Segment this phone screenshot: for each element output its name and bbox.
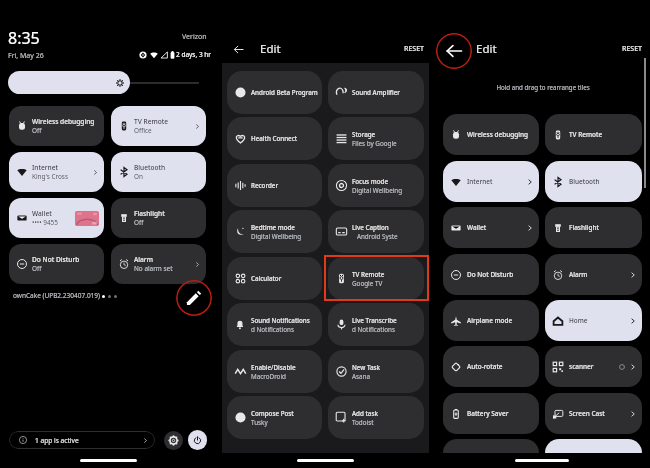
staticText: Off xyxy=(32,264,42,273)
staticText: Wireless debugging xyxy=(467,130,534,139)
staticText: Tusky xyxy=(251,418,268,427)
staticText: d Notifications xyxy=(352,325,395,334)
staticText: Recorder xyxy=(251,181,279,190)
staticText: RESET xyxy=(404,44,425,54)
button[interactable]: Bedtime mode xyxy=(227,210,322,253)
staticText: Off xyxy=(32,126,42,135)
staticText: Digital Wellbeing xyxy=(251,232,302,241)
staticText: Fri, May 26 xyxy=(8,51,44,61)
button[interactable]: Health Connect xyxy=(227,117,322,160)
staticText: Flashlight xyxy=(134,209,165,218)
staticText: •••• 9455 xyxy=(32,218,58,227)
button[interactable]: scanner xyxy=(545,346,642,387)
button[interactable]: Storage xyxy=(328,117,424,160)
staticText: Compose Post xyxy=(251,409,294,418)
staticText: Storage xyxy=(352,130,376,139)
button[interactable]: Focus mode xyxy=(328,164,424,207)
staticText: Office xyxy=(134,126,152,135)
staticText: Files by Google xyxy=(352,139,397,148)
staticText: Sound Notifications xyxy=(251,316,310,325)
button[interactable]: TV Remote xyxy=(545,114,642,155)
button[interactable]: Sound Amplifier xyxy=(328,71,424,114)
staticText: Sound Amplifier xyxy=(352,88,400,97)
staticText: Bluetooth xyxy=(569,177,637,186)
button[interactable]: Settings xyxy=(164,431,183,450)
button[interactable] xyxy=(443,439,539,468)
staticText: Internet xyxy=(32,163,59,172)
staticText: Flashlight xyxy=(569,223,637,232)
button[interactable]: Wireless debugging xyxy=(9,106,104,146)
button[interactable]: Enable/Disable xyxy=(227,350,322,393)
button[interactable]: Android Beta Program xyxy=(227,71,322,114)
button[interactable]: Edit xyxy=(176,280,212,316)
staticText: Calculator xyxy=(251,274,282,283)
button[interactable]: Wallet xyxy=(443,207,539,248)
staticText: Enable/Disable xyxy=(251,363,296,372)
button[interactable]: Internet xyxy=(9,152,104,192)
staticText: New Task xyxy=(352,363,381,372)
staticText: Google TV xyxy=(352,279,383,288)
button[interactable]: Auto-rotate xyxy=(443,346,539,387)
button[interactable]: Calculator xyxy=(227,257,322,300)
button[interactable]: Bluetooth xyxy=(545,161,642,202)
button[interactable]: Back xyxy=(228,39,248,59)
button[interactable]: Flashlight xyxy=(545,207,642,248)
button[interactable]: Live Caption xyxy=(328,210,424,253)
staticText: Hold and drag to rearrange tiles xyxy=(433,83,650,91)
button[interactable]: Add task xyxy=(328,396,424,439)
button[interactable]: Screen Cast xyxy=(545,393,642,434)
button[interactable]: Battery Saver xyxy=(443,393,539,434)
button[interactable]: Wallet xyxy=(9,198,104,238)
button[interactable]: 1 app is active xyxy=(9,431,155,449)
staticText: Auto-rotate xyxy=(467,362,534,371)
button[interactable]: RESET xyxy=(619,41,646,57)
staticText: Verizon xyxy=(182,32,207,42)
staticText: Android Beta Program xyxy=(251,88,318,97)
button[interactable]: Airplane mode xyxy=(443,300,539,341)
button[interactable]: Live Transcribe xyxy=(328,303,424,346)
staticText: Asana xyxy=(352,372,370,381)
button[interactable]: Sound Notifications xyxy=(227,303,322,346)
staticText: No alarm set xyxy=(134,264,173,273)
button[interactable] xyxy=(545,439,642,468)
staticText: 8:35 xyxy=(8,27,40,49)
staticText: On xyxy=(134,172,143,181)
staticText: ownCake (UPB2.230407.019) xyxy=(13,291,100,300)
button[interactable]: RESET xyxy=(401,41,428,57)
button[interactable]: Alarm xyxy=(545,254,642,295)
button[interactable]: Compose Post xyxy=(227,396,322,439)
button[interactable]: TV Remote xyxy=(328,257,424,300)
staticText: Screen Cast xyxy=(569,409,629,418)
button[interactable]: New Task xyxy=(328,350,424,393)
staticText: Alarm xyxy=(134,255,153,264)
staticText: Digital Wellbeing xyxy=(352,186,403,195)
button[interactable]: Back xyxy=(436,33,472,69)
staticText: Add task xyxy=(352,409,378,418)
staticText: Edit xyxy=(476,41,497,57)
button[interactable]: Recorder xyxy=(227,164,322,207)
staticText: Wireless debugging xyxy=(32,117,95,126)
staticText: Home xyxy=(569,316,629,325)
staticText: Off xyxy=(134,218,144,227)
button[interactable]: Wireless debugging xyxy=(443,114,539,155)
button[interactable]: Home xyxy=(545,300,642,341)
staticText: 2 days, 3 hr xyxy=(176,50,212,59)
staticText: Wallet xyxy=(467,223,526,232)
staticText: 1 app is active xyxy=(35,436,79,445)
button[interactable]: Do Not Disturb xyxy=(9,244,104,284)
staticText: d Notifications xyxy=(251,325,294,334)
staticText: Internet xyxy=(467,177,526,186)
staticText: Todoist xyxy=(352,418,374,427)
button[interactable]: TV Remote xyxy=(111,106,206,146)
button[interactable]: Do Not Disturb xyxy=(443,254,539,295)
button[interactable]: Flashlight xyxy=(111,198,206,238)
button[interactable]: Bluetooth xyxy=(111,152,206,192)
button[interactable]: Alarm xyxy=(111,244,206,284)
staticText: Alarm xyxy=(569,270,629,279)
button[interactable] xyxy=(8,71,199,94)
button[interactable]: Internet xyxy=(443,161,539,202)
staticText: Edit xyxy=(260,41,281,57)
staticText: Live Transcribe xyxy=(352,316,397,325)
button[interactable]: Power xyxy=(188,430,207,450)
